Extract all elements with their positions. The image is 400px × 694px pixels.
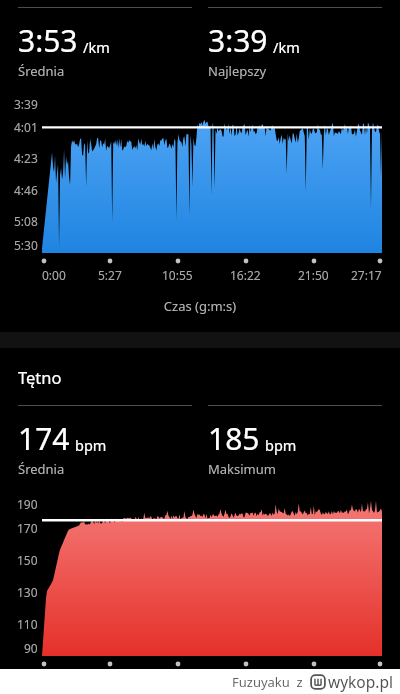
staticText: 4:46 [14, 182, 38, 198]
button[interactable]: 174 [18, 405, 192, 478]
staticText: 90 [24, 640, 38, 656]
staticText: bpm [75, 435, 107, 455]
staticText: 190 [17, 496, 38, 512]
other: wykop.pl logo [310, 674, 326, 690]
staticText: 3:39 [14, 96, 38, 112]
staticText: 16:22 [230, 267, 261, 283]
staticText: Najlepszy [208, 62, 267, 80]
staticText: 10:55 [162, 267, 193, 283]
staticText: 27:17 [351, 267, 382, 283]
staticText: /km [83, 37, 110, 57]
staticText: 3:39 [208, 20, 268, 61]
staticText: Średnia [18, 460, 65, 478]
button[interactable]: 185 [208, 405, 382, 478]
staticText: 170 [17, 520, 38, 536]
staticText: Tętno [18, 366, 62, 388]
staticText: Maksimum [208, 460, 276, 478]
staticText: 150 [17, 552, 38, 568]
staticText: 5:27 [98, 267, 122, 283]
staticText: 185 [208, 418, 260, 459]
staticText: 130 [17, 584, 38, 600]
staticText: 3:53 [18, 20, 78, 61]
button[interactable]: 3:53 [18, 7, 192, 80]
staticText: 5:30 [14, 237, 38, 253]
staticText: 174 [18, 418, 70, 459]
button[interactable]: Fuzuyaku z [0, 669, 400, 694]
staticText: Fuzuyaku z [232, 673, 303, 691]
staticText: Średnia [18, 62, 65, 80]
staticText: 110 [17, 616, 38, 632]
staticText: 4:01 [14, 119, 38, 135]
staticText: /km [273, 37, 300, 57]
staticText: 5:08 [14, 213, 38, 229]
staticText: 0:00 [42, 267, 66, 283]
staticText: Czas (g:m:s) [0, 297, 400, 315]
button[interactable]: 3:39 [208, 7, 382, 80]
staticText: 4:23 [14, 150, 38, 166]
staticText: wykop.pl [328, 671, 393, 692]
staticText: bpm [265, 435, 297, 455]
staticText: 21:50 [298, 267, 329, 283]
